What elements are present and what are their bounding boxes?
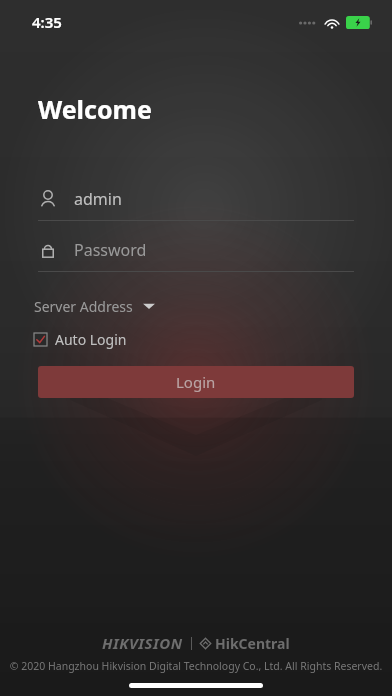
staticText: HikCentral: [215, 634, 290, 653]
button[interactable]: Server Address: [34, 292, 155, 320]
staticText: Server Address: [34, 297, 133, 316]
staticText: HIKVISION: [102, 633, 183, 653]
staticText: 4:35: [32, 12, 62, 32]
button[interactable]: Auto Login: [34, 326, 127, 352]
staticText: Auto Login: [55, 330, 127, 349]
staticText: Password: [74, 239, 147, 261]
staticText: © 2020 Hangzhou Hikvision Digital Techno…: [4, 659, 388, 673]
button[interactable]: admin: [38, 182, 354, 221]
staticText: Login: [176, 372, 216, 392]
staticText: Welcome: [38, 92, 152, 126]
button[interactable]: Password: [38, 233, 354, 272]
button[interactable]: Login: [38, 366, 354, 398]
staticText: admin: [74, 188, 122, 210]
